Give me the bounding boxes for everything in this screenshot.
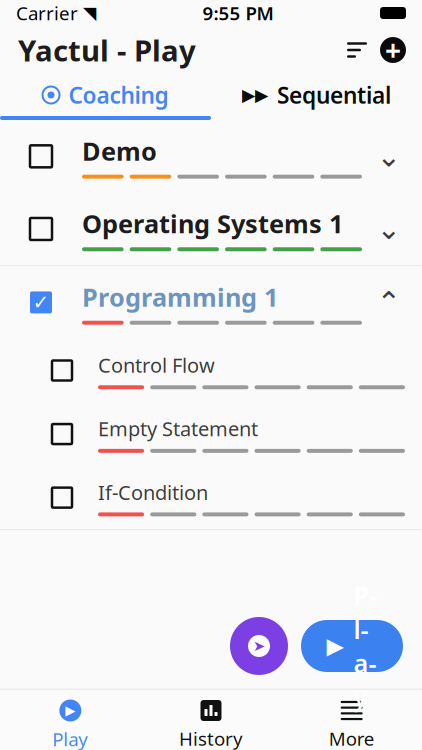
button[interactable]: Control Flow (0, 339, 422, 402)
staticText: Sequential (277, 80, 391, 110)
staticText: ▶▶ (242, 85, 268, 105)
button[interactable]: Sort (340, 33, 374, 67)
staticText: Carrier (16, 1, 78, 25)
staticText: Demo (82, 134, 157, 168)
staticText: ⌃ (376, 286, 401, 319)
staticText: ➤ (253, 638, 265, 654)
button[interactable]: Add (374, 31, 412, 69)
staticText: ▶ (65, 703, 75, 718)
staticText: ✓ (32, 291, 49, 314)
button[interactable]: More (281, 700, 422, 750)
staticText: ⌄ (376, 140, 401, 173)
button[interactable]: If-Condition (0, 466, 422, 529)
staticText: If-Condition (98, 479, 208, 505)
staticText: Programming 1 (82, 280, 278, 314)
staticText: Play (353, 579, 377, 713)
staticText: + (385, 31, 401, 69)
button[interactable]: ▶ (0, 699, 141, 750)
button[interactable]: History (141, 700, 281, 750)
staticText: 9:55 PM (202, 1, 273, 25)
staticText: More (329, 726, 375, 750)
staticText: Operating Systems 1 (82, 207, 343, 240)
staticText: Empty Statement (98, 415, 258, 442)
staticText: ▶ (326, 633, 343, 659)
staticText: History (179, 726, 243, 750)
button[interactable]: ▶▶ (211, 74, 422, 116)
button[interactable]: Empty Statement (0, 402, 422, 466)
button[interactable]: ✓ (0, 266, 422, 339)
staticText: Coaching (68, 80, 168, 110)
button[interactable]: ▶ (301, 620, 403, 672)
staticText: ⌄ (376, 212, 401, 246)
staticText: Yactul - Play (18, 30, 196, 69)
button[interactable]: Demo (0, 120, 422, 193)
staticText: Control Flow (98, 352, 215, 378)
staticText: Play (52, 726, 88, 750)
button[interactable]: Operating Systems 1 (0, 193, 422, 265)
staticText: ◥ (83, 3, 96, 23)
button[interactable]: Coaching (0, 74, 211, 116)
button[interactable]: Explore (230, 617, 288, 675)
